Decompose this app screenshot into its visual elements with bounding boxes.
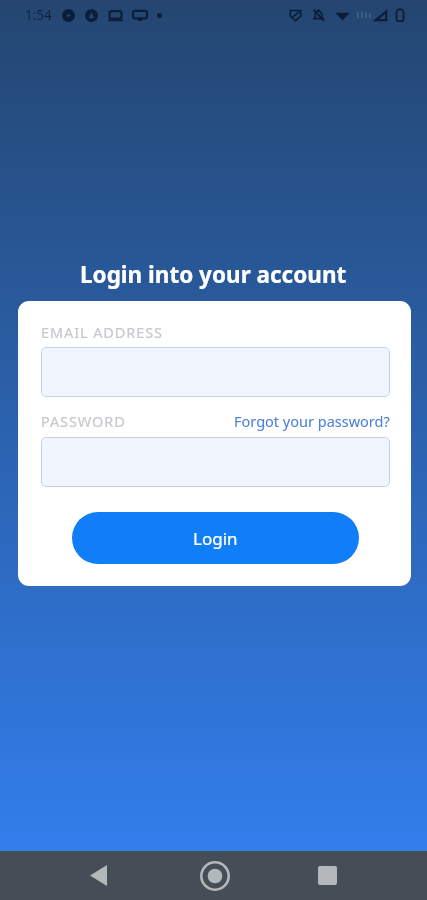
button[interactable]: Home [190,851,239,900]
button[interactable]: Recent apps [303,851,352,900]
staticText: 1:54 [25,6,52,24]
staticText: EMAIL ADDRESS [41,322,163,342]
staticText: Login into your account [80,259,347,290]
button[interactable]: Back [74,851,123,900]
staticText: PASSWORD [41,411,126,431]
button[interactable]: Forgot your password? [234,411,390,431]
button[interactable] [41,347,390,397]
staticText: Login [193,527,238,550]
button[interactable]: Login [72,512,359,564]
staticText: Forgot your password? [234,411,390,431]
button[interactable] [41,437,390,487]
